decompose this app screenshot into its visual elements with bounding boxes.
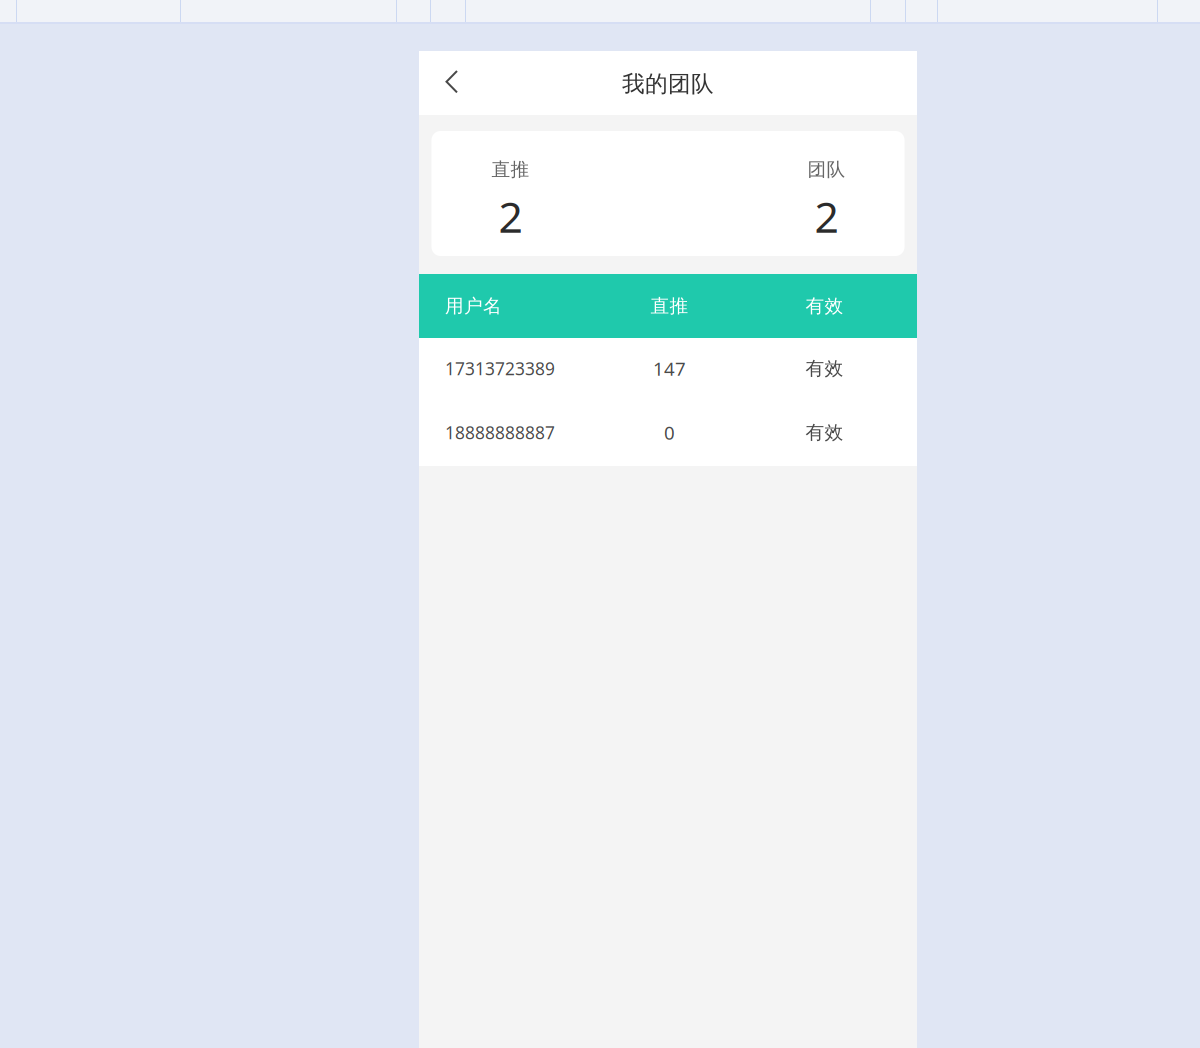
staticText: 147 [653,356,686,381]
staticText: 2 [814,188,838,245]
staticText: 17313723389 [445,357,555,380]
staticText: 有效 [805,421,843,444]
staticText: 18888888887 [445,421,555,444]
staticText: 有效 [805,357,843,380]
staticText: 直推 [491,158,529,181]
staticText: 直推 [650,294,688,317]
staticText: 有效 [805,294,843,317]
staticText: 0 [664,420,675,445]
staticText: 2 [498,188,522,245]
button[interactable]: 17313723389 [419,338,917,402]
staticText: 团队 [807,158,845,181]
staticText: 用户名 [445,294,502,317]
button[interactable]: Back [430,51,474,115]
button[interactable]: 18888888887 [419,402,917,466]
staticText: 我的团队 [622,70,714,98]
